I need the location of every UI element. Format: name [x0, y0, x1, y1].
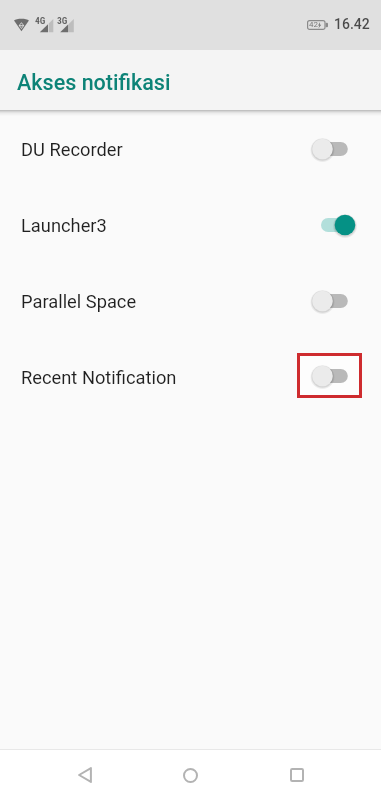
button[interactable]: Switch off	[312, 364, 356, 388]
button[interactable]: Back	[62, 750, 107, 800]
button[interactable]: Switch off	[312, 289, 356, 313]
button[interactable]: Recents	[274, 750, 319, 800]
button[interactable]: Parallel Space	[0, 263, 381, 339]
button[interactable]: Switch on	[312, 213, 356, 237]
staticText: 42	[309, 20, 318, 29]
button[interactable]: Recent Notification	[0, 339, 381, 415]
staticText: Launcher3	[21, 215, 107, 236]
staticText: DU Recorder	[21, 139, 123, 160]
button[interactable]: Switch off	[312, 365, 356, 389]
button[interactable]: DU Recorder	[0, 111, 381, 187]
staticText: 4G	[35, 15, 46, 26]
button[interactable]: Launcher3	[0, 187, 381, 263]
button[interactable]: Home	[168, 750, 213, 800]
button[interactable]: Switch off	[312, 137, 356, 161]
staticText: Akses notifikasi	[17, 70, 171, 95]
staticText: Parallel Space	[21, 291, 137, 312]
staticText: 3G	[57, 15, 68, 26]
staticText: 16.42	[334, 16, 370, 32]
staticText: Recent Notification	[21, 367, 177, 388]
